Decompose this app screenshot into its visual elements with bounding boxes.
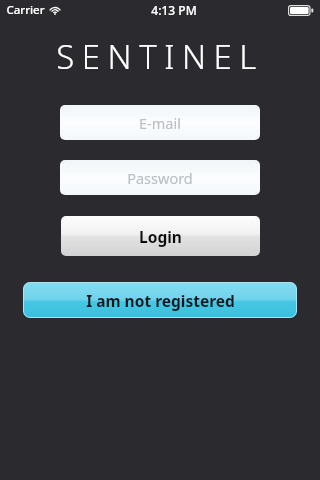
button[interactable]: E-mail [60, 105, 260, 140]
staticText: Carrier [6, 2, 45, 18]
staticText: E-mail [139, 113, 181, 133]
staticText: Password [127, 168, 193, 188]
staticText: I am not registered [86, 290, 235, 311]
button[interactable]: I am not registered [23, 282, 297, 318]
staticText: SENTINEL [56, 34, 264, 74]
staticText: Login [139, 226, 182, 247]
staticText: 4:13 PM [151, 2, 197, 18]
button[interactable]: Login [61, 216, 260, 256]
button[interactable]: Password [60, 160, 260, 195]
